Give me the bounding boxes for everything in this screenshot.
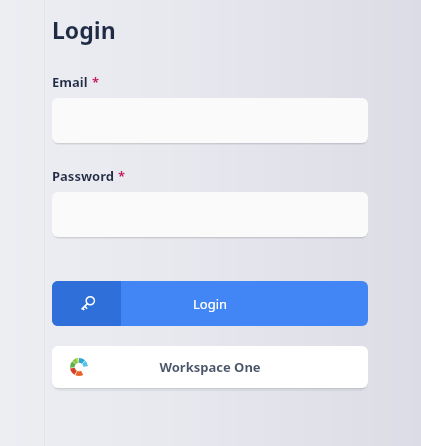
staticText: * xyxy=(118,167,126,185)
other: Login with password xyxy=(77,294,97,314)
staticText: Workspace One xyxy=(52,358,368,376)
staticText: Email xyxy=(52,73,88,91)
staticText: Login xyxy=(52,14,116,45)
staticText: * xyxy=(92,73,100,91)
button[interactable]: Login with password xyxy=(52,281,368,326)
button[interactable]: Workspace One xyxy=(52,346,368,388)
staticText: Login xyxy=(52,295,368,313)
staticText: Password xyxy=(52,167,114,185)
